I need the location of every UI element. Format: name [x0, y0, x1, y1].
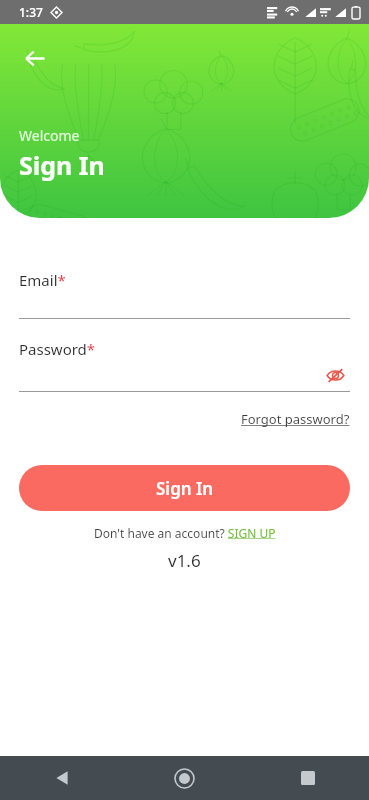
- button[interactable]: Back: [14, 38, 54, 78]
- button[interactable]: Back: [0, 756, 123, 800]
- staticText: Email*: [19, 270, 66, 290]
- staticText: Sign In: [156, 477, 214, 500]
- staticText: Welcome: [19, 126, 80, 145]
- staticText: Forgot password?: [241, 410, 350, 428]
- button[interactable]: Home: [123, 756, 246, 800]
- staticText: 1:37: [19, 4, 43, 20]
- button[interactable]: Sign In: [19, 465, 350, 511]
- button[interactable]: Don't have an account? SIGN UP: [94, 523, 276, 543]
- staticText: Don't have an account? SIGN UP: [94, 525, 276, 541]
- button[interactable]: Toggle password visibility: [320, 360, 350, 390]
- staticText: Sign In: [19, 148, 105, 182]
- staticText: v1.6: [168, 549, 201, 572]
- button[interactable]: Recents: [246, 756, 369, 800]
- button[interactable]: Forgot password?: [241, 408, 350, 430]
- staticText: Password*: [19, 339, 96, 359]
